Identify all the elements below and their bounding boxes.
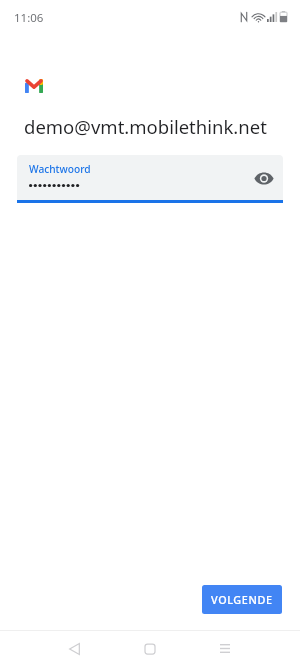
staticText: VOLGENDE: [211, 592, 273, 607]
button[interactable]: Show password: [248, 162, 280, 194]
button[interactable]: VOLGENDE: [202, 585, 282, 614]
staticText: demo@vmt.mobilethink.net: [24, 114, 267, 139]
button[interactable]: Recents: [207, 630, 243, 667]
button[interactable]: Back: [56, 630, 92, 667]
staticText: 11:06: [14, 10, 44, 26]
button[interactable]: Home: [132, 630, 168, 667]
button[interactable]: Wachtwoord: [17, 155, 283, 203]
staticText: Wachtwoord: [29, 162, 91, 176]
